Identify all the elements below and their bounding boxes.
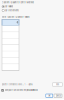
button[interactable]: By Increments [0, 8, 64, 12]
button[interactable]: By Values [0, 4, 64, 8]
staticText: Custom Quantity Entry Method [1, 1, 33, 4]
button[interactable] [2, 26, 19, 32]
button[interactable] [2, 51, 19, 58]
button[interactable]: OK [46, 94, 53, 97]
staticText: Specify confidence level = 1 - alpha [1, 83, 32, 86]
button[interactable]: Compute smoothed empirical likelihood [0, 86, 64, 92]
button[interactable] [2, 58, 19, 64]
button[interactable] [2, 19, 19, 26]
staticText: 0.05 [56, 83, 59, 86]
staticText: By Values [5, 5, 13, 8]
button[interactable] [2, 64, 19, 71]
button[interactable]: Cancel [54, 94, 62, 97]
staticText: Compute smoothed empirical likelihood [5, 89, 38, 91]
staticText: OK [48, 95, 50, 97]
button[interactable] [2, 32, 19, 39]
staticText: Cancel [55, 95, 60, 97]
button[interactable] [2, 39, 19, 45]
staticText: Enter Custom Quantity Values [1, 16, 29, 18]
button[interactable] [2, 45, 19, 51]
staticText: By Increments [5, 9, 19, 12]
